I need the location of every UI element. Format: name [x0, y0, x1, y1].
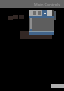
staticText: Main Controls	[34, 2, 61, 7]
button[interactable]	[29, 10, 54, 35]
button[interactable]: Main Controls	[0, 0, 64, 8]
